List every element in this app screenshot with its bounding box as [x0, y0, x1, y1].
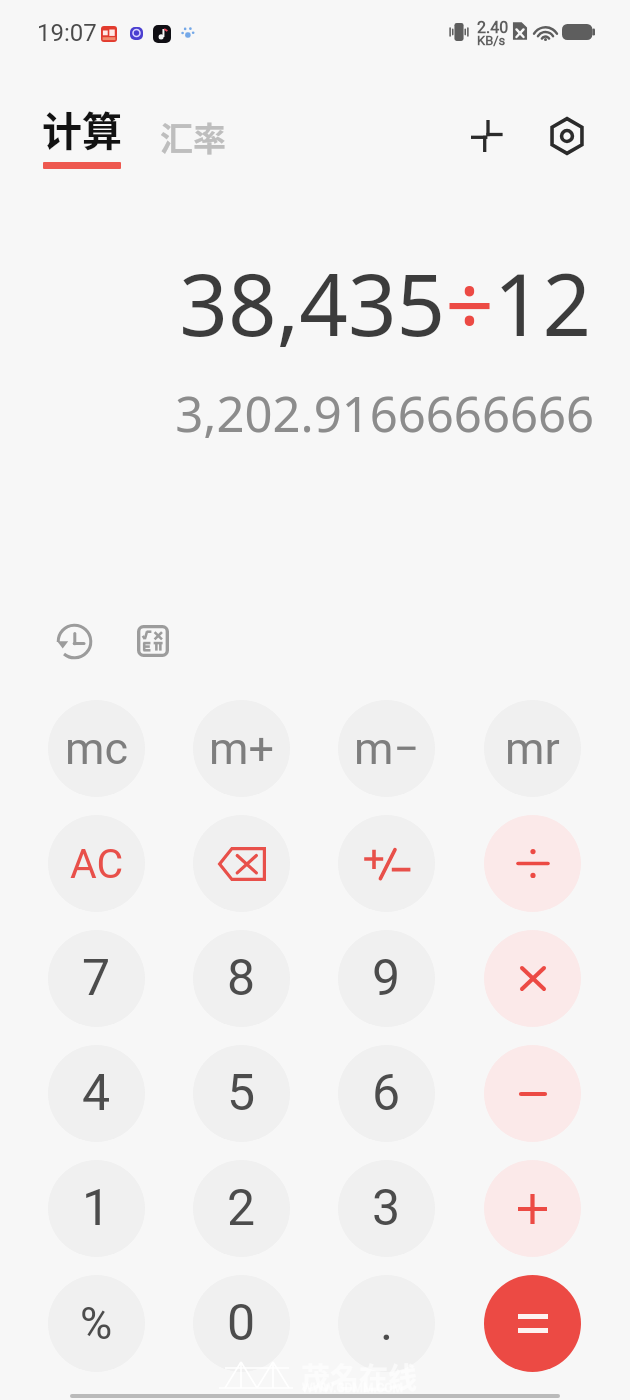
staticText: 6: [372, 1064, 401, 1123]
button[interactable]: 7: [48, 930, 145, 1027]
button[interactable]: .: [338, 1275, 435, 1372]
button[interactable]: 计算: [42, 100, 122, 169]
staticText: 茂名在线: [301, 1355, 418, 1397]
button[interactable]: mr: [484, 700, 581, 797]
button[interactable]: 4: [48, 1045, 145, 1142]
button[interactable]: m−: [338, 700, 435, 797]
staticText: 3: [372, 1179, 401, 1238]
button[interactable]: Scientific: [129, 617, 177, 665]
button[interactable]: Multiply: [484, 930, 581, 1027]
button[interactable]: 3: [338, 1160, 435, 1257]
staticText: 8: [227, 949, 256, 1008]
button[interactable]: 9: [338, 930, 435, 1027]
staticText: m−: [354, 722, 420, 775]
button[interactable]: Settings: [543, 112, 591, 160]
staticText: 38,435÷12: [0, 245, 591, 361]
staticText: %: [80, 1298, 113, 1350]
staticText: AC: [70, 840, 124, 888]
button[interactable]: 0: [193, 1275, 290, 1372]
button[interactable]: Divide: [484, 815, 581, 912]
staticText: 3,202.9166666666: [0, 380, 594, 447]
staticText: m+: [209, 722, 274, 775]
button[interactable]: Plus minus: [338, 815, 435, 912]
staticText: mr: [505, 722, 560, 775]
staticText: 2.40: [477, 18, 509, 37]
button[interactable]: %: [48, 1275, 145, 1372]
staticText: 汇率: [160, 113, 226, 161]
staticText: WWW.GDMM.COM: [302, 1381, 404, 1395]
staticText: 1: [82, 1179, 111, 1238]
staticText: mc: [65, 722, 129, 775]
staticText: 5: [227, 1064, 256, 1123]
button[interactable]: 汇率: [160, 113, 226, 161]
button[interactable]: AC: [48, 815, 145, 912]
button[interactable]: Backspace: [193, 815, 290, 912]
staticText: 7: [82, 949, 111, 1008]
button[interactable]: m+: [193, 700, 290, 797]
button[interactable]: Collapse: [463, 112, 511, 160]
button[interactable]: 1: [48, 1160, 145, 1257]
staticText: 2: [227, 1179, 256, 1238]
button[interactable]: mc: [48, 700, 145, 797]
staticText: .: [380, 1294, 394, 1353]
staticText: KB/s: [477, 33, 506, 48]
button[interactable]: History: [50, 617, 98, 665]
button[interactable]: Equals: [484, 1275, 581, 1372]
button[interactable]: 2: [193, 1160, 290, 1257]
button[interactable]: 6: [338, 1045, 435, 1142]
staticText: 计算: [42, 100, 122, 158]
staticText: 9: [372, 949, 401, 1008]
staticText: 0: [227, 1294, 256, 1353]
staticText: 19:07: [37, 19, 97, 47]
button[interactable]: 5: [193, 1045, 290, 1142]
button[interactable]: 8: [193, 930, 290, 1027]
button[interactable]: Plus: [484, 1160, 581, 1257]
staticText: 4: [82, 1064, 111, 1123]
button[interactable]: Minus: [484, 1045, 581, 1142]
